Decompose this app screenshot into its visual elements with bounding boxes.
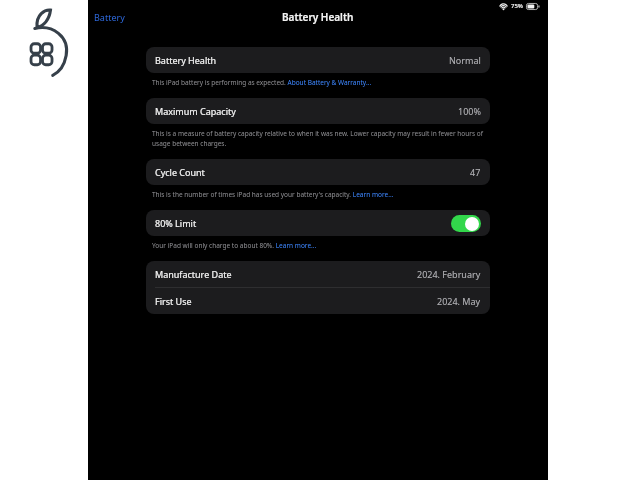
staticText: Manufacture Date (155, 268, 232, 280)
staticText: 47 (470, 166, 481, 178)
staticText: This is a measure of battery capacity re… (152, 129, 486, 148)
other: App logo (18, 8, 74, 76)
staticText: Battery Health (282, 10, 354, 24)
staticText: Cycle Count (155, 166, 205, 178)
staticText: This iPad battery is performing as expec… (152, 78, 372, 87)
button[interactable]: Cycle Count (146, 159, 490, 185)
staticText: Normal (449, 54, 481, 66)
button[interactable]: 80% Limit (146, 210, 490, 236)
staticText: 2024. May (437, 295, 481, 307)
other: Battery 75 percent (526, 3, 540, 10)
staticText: Battery Health (155, 54, 217, 66)
button[interactable]: Maximum Capacity (146, 98, 490, 124)
staticText: 2024. February (417, 268, 481, 280)
staticText: Maximum Capacity (155, 105, 236, 117)
staticText: 100% (458, 105, 481, 117)
staticText: 80% Limit (155, 217, 197, 229)
button[interactable]: First Use (146, 288, 490, 314)
staticText: Your iPad will only charge to about 80%.… (152, 241, 317, 250)
button[interactable]: Manufacture Date (146, 261, 490, 287)
other: Wi-Fi (499, 3, 508, 10)
staticText: First Use (155, 295, 192, 307)
staticText: This is the number of times iPad has use… (152, 190, 394, 199)
button[interactable]: Battery (91, 8, 128, 26)
button[interactable]: 80% Limit toggle, on (451, 215, 481, 232)
staticText: Battery (94, 11, 125, 23)
button[interactable]: Battery Health (146, 47, 490, 73)
staticText: 75% (511, 2, 523, 10)
